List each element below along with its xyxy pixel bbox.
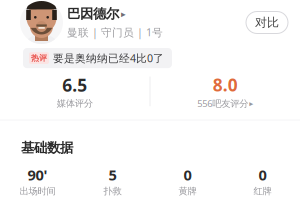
staticText: 556吧友评分 [197, 97, 248, 110]
staticText: 要是奥纳纳已经4比0了 [53, 51, 164, 65]
staticText: 红牌 [253, 185, 271, 197]
staticText: ▸ [121, 9, 126, 19]
button[interactable]: 巴因德尔 [20, 1, 163, 44]
staticText: 出场时间 [19, 185, 55, 197]
staticText: 0 [183, 165, 191, 184]
staticText: ▸ [249, 99, 253, 108]
staticText: 0 [258, 165, 266, 184]
staticText: 黄牌 [178, 185, 196, 197]
staticText: 5 [108, 165, 116, 184]
button[interactable]: 8.0 [150, 73, 300, 110]
button[interactable]: 热评 [23, 48, 172, 68]
staticText: 6.5 [62, 74, 87, 97]
staticText: 曼联 | 守门员 | 1号 [67, 25, 163, 39]
staticText: 基础数据 [21, 140, 73, 156]
staticText: 扑救 [103, 185, 121, 197]
staticText: 8.0 [213, 73, 238, 96]
staticText: 90' [27, 165, 47, 184]
staticText: 媒体评分 [57, 98, 93, 109]
staticText: 对比 [255, 15, 279, 30]
staticText: 热评 [31, 53, 47, 63]
staticText: 巴因德尔 [67, 6, 119, 22]
button[interactable]: 对比 [246, 11, 288, 33]
